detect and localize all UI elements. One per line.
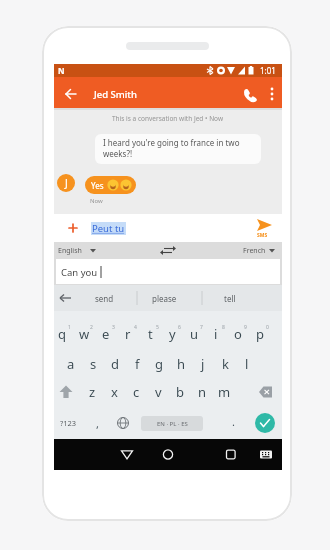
staticText: tell <box>224 293 236 304</box>
staticText: 0 <box>266 324 269 331</box>
staticText: I heard you're going to france in two we… <box>103 137 240 159</box>
staticText: a <box>67 355 75 373</box>
staticText: 3 <box>112 324 115 331</box>
staticText: h <box>177 355 186 373</box>
staticText: w <box>79 325 90 343</box>
staticText: e <box>102 325 110 343</box>
staticText: ?123 <box>60 418 77 428</box>
staticText: f <box>135 355 140 373</box>
staticText: v <box>155 383 162 401</box>
staticText: Peut tu <box>92 222 125 235</box>
staticText: J <box>65 176 68 190</box>
staticText: Jed Smith <box>94 88 137 101</box>
staticText: d <box>111 355 119 373</box>
staticText: x <box>111 383 118 401</box>
staticText: g <box>155 355 163 373</box>
staticText: j <box>201 355 205 373</box>
staticText: q <box>58 325 66 343</box>
staticText: French <box>243 246 266 256</box>
staticText: b <box>176 383 184 401</box>
staticText: s <box>90 355 97 373</box>
staticText: 2 <box>90 324 93 331</box>
staticText: , <box>96 416 99 431</box>
staticText: p <box>256 325 264 343</box>
staticText: 8 <box>222 324 225 331</box>
staticText: N <box>58 65 65 76</box>
staticText: 6 <box>178 324 181 331</box>
staticText: Yes <box>91 180 104 191</box>
staticText: . <box>232 414 235 429</box>
staticText: l <box>245 355 249 373</box>
staticText: SMS <box>257 232 268 239</box>
staticText: y <box>169 325 176 343</box>
staticText: m <box>218 383 231 401</box>
staticText: Now <box>90 197 103 205</box>
staticText: 5 <box>156 324 159 331</box>
staticText: k <box>222 355 229 373</box>
staticText: t <box>148 325 153 343</box>
staticText: 9 <box>244 324 247 331</box>
staticText: 7 <box>200 324 203 331</box>
staticText: r <box>125 325 131 343</box>
staticText: 1 <box>68 324 71 331</box>
staticText: z <box>89 383 96 401</box>
staticText: please <box>152 293 177 304</box>
staticText: send <box>95 293 114 304</box>
staticText: c <box>133 383 140 401</box>
staticText: EN · PL · ES <box>157 420 188 428</box>
staticText: 1:01 <box>260 65 276 76</box>
staticText: 4 <box>134 324 137 331</box>
staticText: n <box>198 383 207 401</box>
staticText: This is a conversation with Jed • Now <box>112 114 224 123</box>
staticText: o <box>234 325 242 343</box>
staticText: English <box>58 246 82 256</box>
staticText: Can you <box>61 266 98 279</box>
staticText: i <box>214 325 218 343</box>
staticText: u <box>190 325 199 343</box>
